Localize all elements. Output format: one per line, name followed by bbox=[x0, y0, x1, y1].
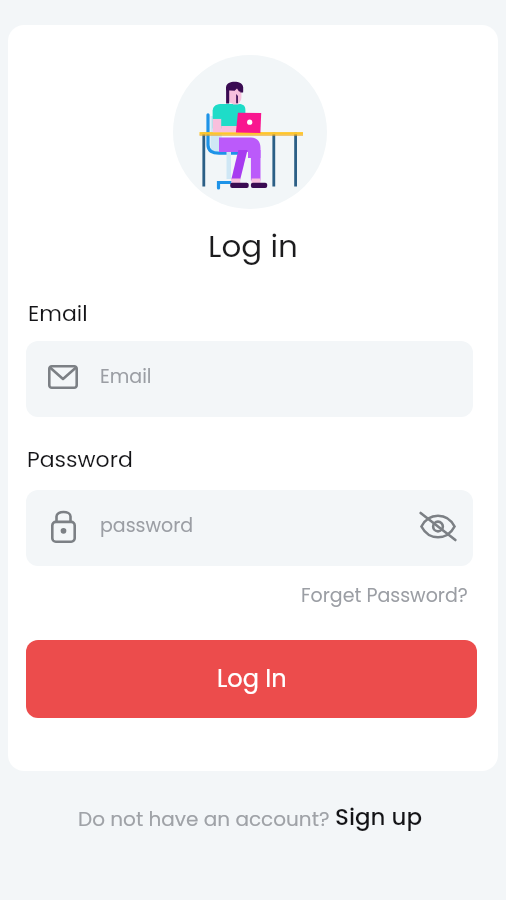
staticText: password bbox=[100, 512, 194, 539]
staticText: Do not have an account? bbox=[78, 805, 335, 833]
staticText: Log In bbox=[217, 662, 287, 696]
button[interactable]: Do not have an account? bbox=[0, 801, 503, 833]
staticText: Password bbox=[27, 444, 133, 475]
staticText: Sign up bbox=[335, 801, 422, 833]
button[interactable]: Email bbox=[26, 341, 473, 417]
staticText: Forget Password? bbox=[301, 582, 468, 609]
button[interactable]: Show password bbox=[413, 505, 459, 551]
staticText: Log in bbox=[208, 224, 298, 267]
button[interactable]: Log In bbox=[26, 640, 477, 718]
button[interactable]: password bbox=[26, 490, 473, 566]
button[interactable]: Forget Password? bbox=[299, 580, 470, 611]
staticText: Email bbox=[100, 363, 152, 390]
staticText: Email bbox=[28, 298, 88, 329]
